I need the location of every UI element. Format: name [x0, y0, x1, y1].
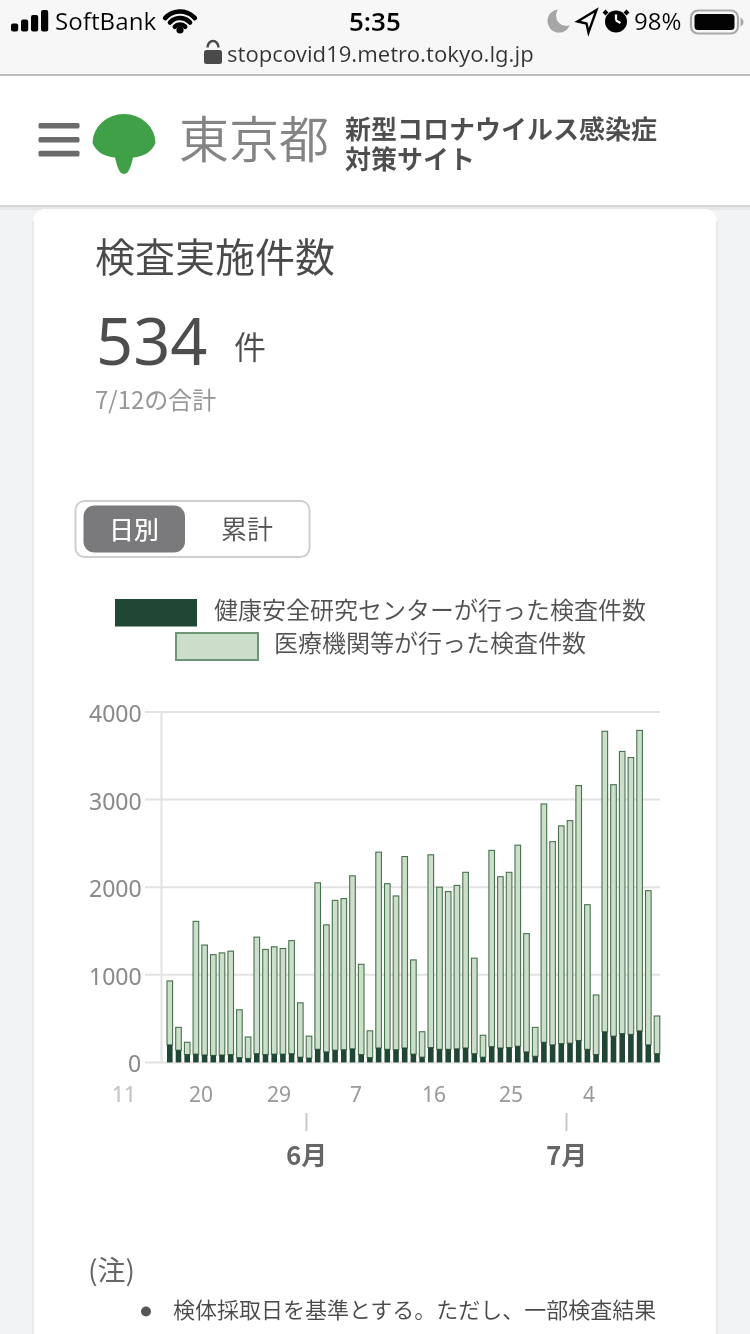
button[interactable]: 東京都 [179, 100, 329, 172]
staticText: 対策サイト [345, 139, 476, 177]
button[interactable] [28, 112, 88, 166]
button[interactable]: 累計 [185, 501, 309, 555]
staticText: 11 [112, 1080, 137, 1109]
staticText: stopcovid19.metro.tokyo.lg.jp [227, 38, 534, 68]
staticText: 16 [422, 1080, 447, 1109]
staticText: 3000 [89, 785, 142, 816]
staticText: SoftBank [55, 4, 157, 37]
button[interactable]: 日別 [83, 504, 185, 552]
staticText: 0 [128, 1047, 142, 1078]
staticText: 4 [583, 1080, 596, 1109]
staticText: 1000 [89, 960, 142, 991]
staticText: 7/12の合計 [95, 381, 217, 416]
staticText: 29 [267, 1080, 292, 1109]
staticText: 6月 [286, 1135, 328, 1173]
staticText: 新型コロナウイルス感染症 [345, 109, 658, 147]
staticText: 98% [634, 4, 682, 37]
staticText: 件 [234, 322, 267, 368]
staticText: 534 [96, 296, 208, 385]
staticText: 日別 [109, 510, 160, 546]
staticText: 20 [189, 1080, 214, 1109]
staticText: 累計 [221, 509, 274, 547]
button[interactable]: stopcovid19.metro.tokyo.lg.jp [195, 38, 565, 70]
staticText: 検体採取日を基準とする。ただし、一部検査結果 [173, 1292, 657, 1324]
staticText: 7月 [546, 1135, 588, 1173]
staticText: 医療機関等が行った検査件数 [274, 624, 586, 659]
staticText: 検査実施件数 [95, 226, 335, 284]
staticText: 7 [350, 1080, 363, 1109]
staticText: 5:35 [349, 3, 401, 38]
staticText: 4000 [89, 697, 142, 728]
staticText: 2000 [89, 872, 142, 903]
staticText: 25 [499, 1080, 524, 1109]
staticText: 健康安全研究センターが行った検査件数 [214, 591, 646, 626]
staticText: (注) [88, 1249, 135, 1290]
